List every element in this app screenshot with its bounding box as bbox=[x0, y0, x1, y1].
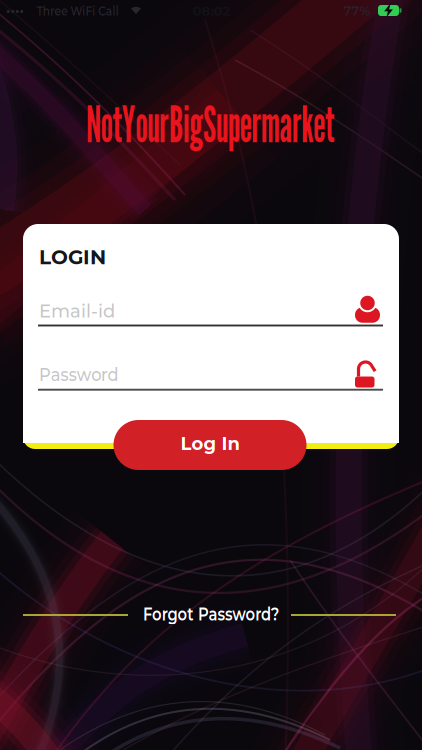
button[interactable]: Password bbox=[39, 353, 384, 393]
staticText: Log In bbox=[180, 432, 239, 454]
staticText: LOGIN bbox=[39, 245, 106, 269]
staticText: Email-id bbox=[39, 300, 115, 322]
staticText: Three WiFi Call bbox=[29, 3, 127, 19]
staticText: Password bbox=[39, 363, 127, 385]
button[interactable]: Email-id bbox=[39, 289, 384, 329]
button[interactable]: Log In bbox=[113, 420, 306, 470]
staticText: 77% bbox=[343, 3, 370, 19]
staticText: Forgot Password? bbox=[128, 603, 294, 625]
staticText: 08:02 bbox=[192, 3, 230, 19]
staticText: NotYourBigSupermarket bbox=[53, 94, 367, 154]
button[interactable]: Forgot Password? bbox=[128, 603, 294, 625]
